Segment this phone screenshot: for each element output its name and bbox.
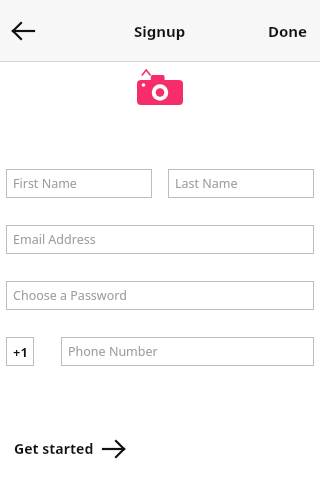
button[interactable]: Email Address [6,225,314,254]
button[interactable]: Done [256,13,320,49]
staticText: +1 [13,343,28,361]
button[interactable]: +1 [6,337,34,366]
staticText: Done [268,21,308,41]
staticText: Get started [14,439,94,458]
staticText: Choose a Password [13,287,127,304]
button[interactable]: Back [6,14,40,48]
staticText: First Name [13,175,77,192]
button[interactable]: Last Name [168,169,314,198]
button[interactable]: Choose a Password [6,281,314,310]
button[interactable]: Get started [14,439,125,458]
staticText: Phone Number [68,343,158,360]
button[interactable]: Phone Number [61,337,314,366]
staticText: Last Name [175,175,238,192]
staticText: Email Address [13,231,96,248]
staticText: Signup [134,21,186,41]
button[interactable]: First Name [6,169,152,198]
button[interactable]: Add profile photo [137,65,183,107]
